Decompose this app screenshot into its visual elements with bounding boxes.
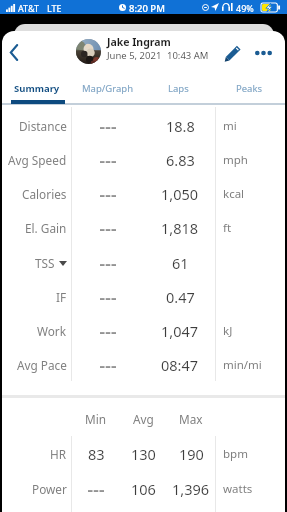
staticText: Distance <box>19 118 67 134</box>
staticText: TSS <box>35 255 55 271</box>
staticText: kcal <box>223 186 245 202</box>
staticText: 10:43 AM <box>167 49 209 62</box>
button[interactable]: Summary <box>2 71 72 105</box>
staticText: Jake Ingram <box>107 35 171 49</box>
staticText: 8:20 PM <box>129 2 165 15</box>
button[interactable]: Map/Graph <box>72 71 143 105</box>
staticText: Power <box>32 481 67 497</box>
button[interactable]: Back <box>2 37 28 67</box>
staticText: HR <box>50 446 67 462</box>
button[interactable]: Calories <box>2 177 285 211</box>
staticText: LTE <box>47 2 62 14</box>
staticText: 1,050 <box>161 184 199 204</box>
staticText: El. Gain <box>25 220 67 236</box>
staticText: Avg <box>133 411 154 427</box>
staticText: AT&T <box>18 2 39 14</box>
staticText: Avg Speed <box>8 152 67 168</box>
staticText: 18.8 <box>166 116 195 136</box>
staticText: 83 <box>88 444 105 464</box>
staticText: Summary <box>14 82 60 95</box>
staticText: Work <box>37 323 67 339</box>
staticText: Avg Pace <box>17 357 67 373</box>
staticText: Calories <box>22 186 67 202</box>
staticText: ft <box>223 220 232 236</box>
staticText: 61 <box>172 253 189 273</box>
staticText: IF <box>56 289 67 305</box>
button[interactable]: TSS <box>2 246 285 280</box>
staticText: Min <box>85 411 107 427</box>
staticText: 190 <box>179 444 204 464</box>
button[interactable]: More options <box>249 37 277 68</box>
button[interactable]: Peaks <box>214 71 285 105</box>
staticText: mi <box>223 118 237 134</box>
staticText: 49% <box>236 2 254 14</box>
button[interactable]: HR <box>2 436 285 471</box>
staticText: Max <box>179 411 203 427</box>
button[interactable]: Edit <box>219 37 247 68</box>
staticText: Laps <box>168 82 189 95</box>
staticText: watts <box>223 481 253 497</box>
button[interactable]: El. Gain <box>2 211 285 245</box>
staticText: Map/Graph <box>82 82 134 95</box>
staticText: 1,818 <box>161 218 199 238</box>
staticText: kJ <box>223 323 233 339</box>
staticText: Peaks <box>236 82 263 95</box>
staticText: 130 <box>131 444 156 464</box>
staticText: 1,047 <box>161 321 199 341</box>
staticText: mph <box>223 152 248 168</box>
staticText: bpm <box>223 446 248 462</box>
button[interactable]: Avg Speed <box>2 143 285 177</box>
button[interactable]: Avg Pace <box>2 348 285 382</box>
button[interactable]: Work <box>2 314 285 348</box>
staticText: June 5, 2021 <box>107 49 162 62</box>
staticText: 6.83 <box>166 150 195 170</box>
staticText: 08:47 <box>161 355 199 375</box>
staticText: 0.47 <box>166 287 195 307</box>
staticText: 1,396 <box>172 479 210 499</box>
staticText: min/mi <box>223 357 262 373</box>
button[interactable]: Power <box>2 471 285 506</box>
button[interactable]: Distance <box>2 109 285 143</box>
staticText: 106 <box>131 479 156 499</box>
button[interactable]: IF <box>2 280 285 314</box>
button[interactable]: Laps <box>143 71 214 105</box>
